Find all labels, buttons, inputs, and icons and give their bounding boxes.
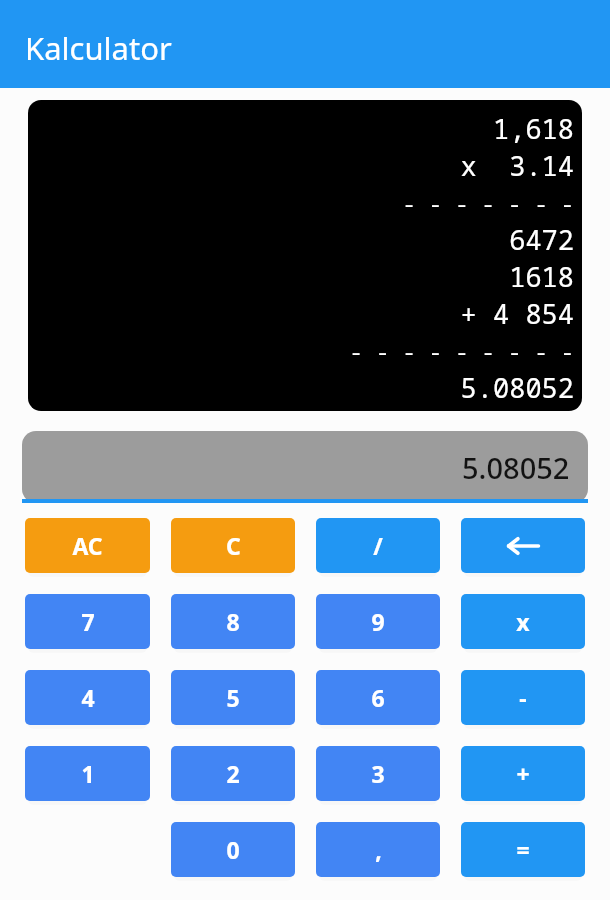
staticText: 4: [81, 682, 95, 713]
button[interactable]: 9: [316, 594, 440, 649]
staticText: 5: [226, 682, 240, 713]
staticText: C: [226, 530, 241, 561]
staticText: =: [516, 834, 530, 865]
staticText: +: [516, 758, 530, 789]
button[interactable]: 6: [316, 670, 440, 725]
staticText: 5.08052: [462, 448, 570, 487]
staticText: x: [516, 606, 530, 637]
staticText: 9: [371, 606, 385, 637]
button[interactable]: =: [461, 822, 585, 877]
staticText: 5.08052: [460, 369, 574, 406]
staticText: AC: [72, 530, 103, 561]
button[interactable]: C: [171, 518, 295, 573]
staticText: -: [519, 682, 527, 713]
button[interactable]: +: [461, 746, 585, 801]
button[interactable]: 2: [171, 746, 295, 801]
button[interactable]: x: [461, 594, 585, 649]
staticText: 6472: [460, 221, 574, 258]
staticText: 6: [371, 682, 385, 713]
staticText: x 3.14: [460, 147, 574, 184]
staticText: - - - - - - -: [402, 188, 574, 218]
staticText: /: [373, 530, 383, 561]
staticText: - - - - - - - - -: [349, 336, 574, 366]
button[interactable]: 3: [316, 746, 440, 801]
button[interactable]: -: [461, 670, 585, 725]
button[interactable]: ,: [316, 822, 440, 877]
button[interactable]: 5.08052: [22, 431, 588, 503]
staticText: 7: [81, 606, 95, 637]
button[interactable]: 4: [25, 670, 150, 725]
staticText: 0: [226, 834, 240, 865]
staticText: 1618: [460, 258, 574, 295]
button[interactable]: AC: [25, 518, 150, 573]
button[interactable]: 7: [25, 594, 150, 649]
button[interactable]: 5: [171, 670, 295, 725]
staticText: ,: [375, 834, 382, 865]
button[interactable]: 8: [171, 594, 295, 649]
staticText: Kalculator: [25, 27, 172, 69]
button[interactable]: Backspace: [461, 518, 585, 573]
staticText: 8: [226, 606, 240, 637]
staticText: 2: [226, 758, 240, 789]
staticText: 3: [371, 758, 385, 789]
staticText: + 4 854: [460, 295, 574, 332]
staticText: 1,618: [460, 110, 574, 147]
staticText: 1: [81, 758, 95, 789]
button[interactable]: 1: [25, 746, 150, 801]
button[interactable]: /: [316, 518, 440, 573]
button[interactable]: 0: [171, 822, 295, 877]
